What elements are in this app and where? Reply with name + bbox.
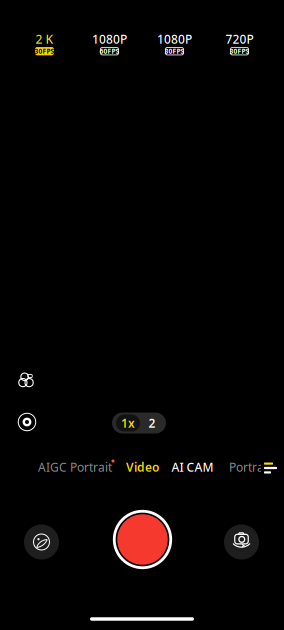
button[interactable]: Gallery: [19, 520, 63, 564]
button[interactable]: Record: [112, 509, 172, 569]
staticText: AIGC Portrait: [38, 459, 112, 475]
button[interactable]: 2: [142, 414, 162, 431]
staticText: 1080P: [157, 31, 192, 47]
staticText: 30FPS: [229, 47, 249, 56]
staticText: 2 K: [35, 31, 53, 47]
button[interactable]: 2 K: [15, 30, 73, 60]
button[interactable]: 1x: [116, 414, 140, 431]
button[interactable]: Switch camera: [219, 520, 263, 564]
button[interactable]: More modes: [259, 456, 281, 480]
staticText: 1080P: [92, 31, 127, 47]
staticText: 60FPS: [99, 47, 119, 56]
staticText: 30FPS: [164, 47, 184, 56]
staticText: 1x: [121, 415, 135, 431]
staticText: 720P: [225, 31, 253, 47]
button[interactable]: 720P: [210, 30, 268, 60]
staticText: Video: [126, 459, 159, 475]
staticText: Portrait: [229, 459, 271, 475]
button[interactable]: Filters: [9, 364, 43, 396]
button[interactable]: 1080P: [145, 30, 203, 60]
button[interactable]: 1080P: [80, 30, 138, 60]
staticText: 30FPS: [34, 47, 54, 56]
staticText: AI CAM: [171, 459, 213, 475]
button[interactable]: Exposure: [10, 406, 44, 438]
staticText: 2: [148, 415, 155, 431]
